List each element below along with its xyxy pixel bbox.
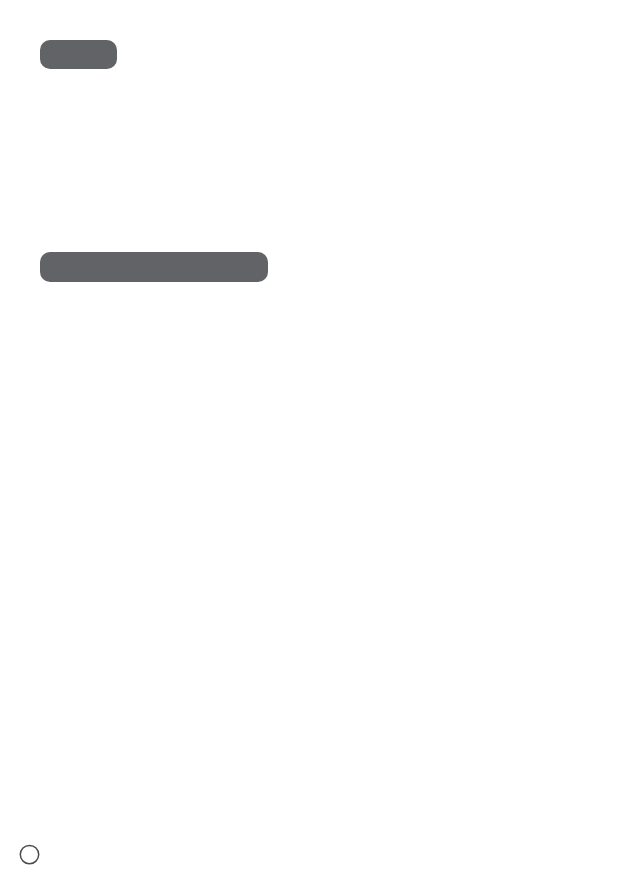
button[interactable]: Title block [40, 40, 117, 69]
button[interactable]: Action block [40, 252, 268, 282]
button[interactable]: Toggle [19, 844, 41, 866]
